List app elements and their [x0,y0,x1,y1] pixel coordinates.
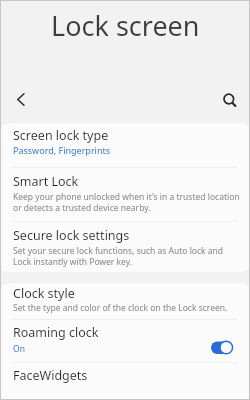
button[interactable]: Screen lock type [0,123,250,167]
button[interactable]: Roaming clock [0,320,250,362]
staticText: Clock style [13,285,75,302]
button[interactable] [10,89,31,110]
staticText: Smart Lock [13,173,79,190]
button[interactable]: Secure lock settings [0,222,250,272]
staticText: Keep your phone unlocked when it's in a … [13,191,240,213]
staticText: Roaming clock [13,324,99,341]
staticText: Password, Fingerprints [13,144,111,156]
button[interactable]: Smart Lock [0,168,250,221]
button[interactable] [219,90,239,110]
button[interactable]: Clock style [0,283,250,319]
staticText: Set your secure lock functions, such as … [13,245,224,267]
staticText: Lock screen [51,7,200,44]
staticText: FaceWidgets [13,367,88,384]
button[interactable]: FaceWidgets [0,363,250,400]
staticText: Secure lock settings [13,227,130,244]
staticText: Set the type and color of the clock on t… [13,302,228,314]
staticText: On [13,343,25,355]
staticText: Screen lock type [13,127,109,144]
